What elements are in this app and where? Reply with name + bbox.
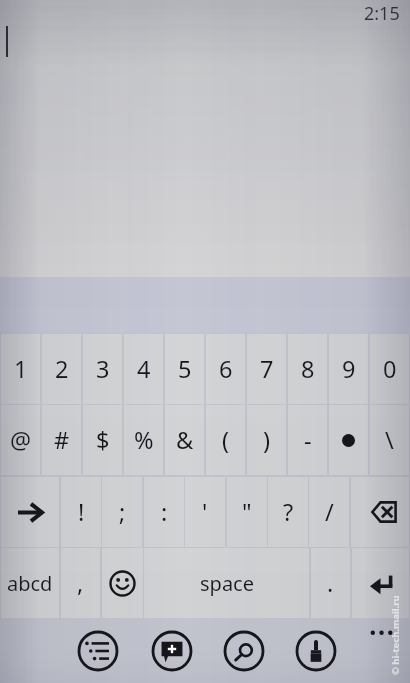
button[interactable]: " [227,477,267,547]
button[interactable]: Backspace [351,477,409,547]
staticText: 5 [178,353,192,385]
staticText: - [304,424,312,456]
button[interactable]: 5 [165,334,204,404]
button[interactable]: space [144,548,309,618]
button[interactable]: Search [223,630,265,672]
staticText: ? [283,496,294,528]
button[interactable]: ; [102,477,142,547]
button[interactable]: ' [185,477,225,547]
button[interactable]: 8 [288,334,327,404]
button[interactable]: , [61,548,100,618]
button[interactable]: 9 [329,334,368,404]
button[interactable]: Shift [1,477,59,547]
button[interactable]: 6 [206,334,245,404]
button[interactable]: 0 [370,334,409,404]
staticText: , [77,567,84,599]
button[interactable]: New message [151,630,193,672]
button[interactable]: abcd [1,548,59,618]
button[interactable]: 3 [83,334,122,404]
staticText: % [134,424,154,456]
button[interactable]: 4 [124,334,163,404]
button[interactable]: Emoji [102,548,143,618]
button[interactable]: ( [206,405,245,475]
staticText: $ [96,424,110,456]
button[interactable]: More options [364,622,402,644]
staticText: 9 [342,353,356,385]
staticText: 4 [137,353,151,385]
staticText: " [242,496,252,528]
button[interactable]: Theme [295,630,337,672]
button[interactable]: 7 [247,334,286,404]
staticText: & [176,424,194,456]
staticText: @ [10,424,32,456]
staticText: 1 [14,353,28,385]
button[interactable]: % [124,405,163,475]
staticText: 7 [260,353,274,385]
staticText: 2 [55,353,69,385]
button[interactable]: 2 [42,334,81,404]
staticText: ' [202,496,208,528]
button[interactable]: / [309,477,349,547]
button[interactable]: Text suggestions [77,630,119,672]
button[interactable]: - [288,405,327,475]
staticText: # [54,424,70,456]
staticText: 8 [301,353,315,385]
staticText: : [161,496,168,528]
button[interactable]: # [42,405,81,475]
staticText: 6 [219,353,233,385]
button[interactable]: ! [61,477,101,547]
button[interactable]: : [144,477,184,547]
staticText: ( [222,424,230,456]
button[interactable]: & [165,405,204,475]
button[interactable]: Enter [352,548,409,618]
button[interactable]: ? [268,477,308,547]
staticText: ) [263,424,271,456]
button[interactable]: \ [370,405,409,475]
staticText: 3 [96,353,110,385]
button[interactable]: 1 [1,334,40,404]
staticText: abcd [7,570,53,597]
button[interactable]: @ [1,405,40,475]
button[interactable] [329,405,368,475]
button[interactable]: $ [83,405,122,475]
button[interactable]: ) [247,405,286,475]
staticText: 0 [383,353,397,385]
staticText: / [325,496,334,528]
staticText: ! [78,496,85,528]
staticText: . [327,567,334,599]
staticText: space [200,570,254,597]
staticText: 2:15 [364,1,400,26]
button[interactable]: . [311,548,350,618]
staticText: \ [385,424,394,456]
staticText: ; [119,496,126,528]
